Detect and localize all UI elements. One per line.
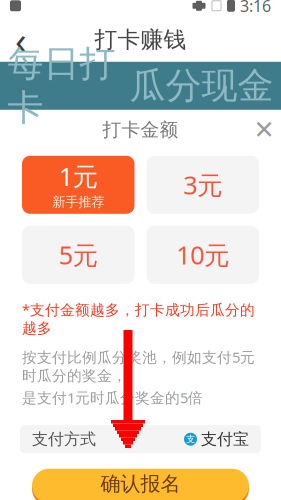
staticText: 按支付比例瓜分奖池，例如支付5元时瓜分的奖金，: [22, 347, 255, 385]
staticText: 支: [186, 433, 195, 445]
button[interactable]: 支付方式: [20, 425, 261, 453]
staticText: 3:16: [240, 0, 271, 16]
staticText: 1元: [59, 159, 98, 193]
staticText: 打卡金额: [102, 118, 178, 141]
button[interactable]: 1元: [22, 156, 134, 214]
button[interactable]: 关闭: [247, 113, 281, 147]
staticText: 新手推荐: [52, 194, 104, 210]
button[interactable]: 10元: [146, 226, 259, 284]
staticText: ✕: [253, 115, 274, 144]
staticText: 每日打卡: [7, 42, 115, 130]
staticText: 5元: [59, 238, 98, 271]
staticText: 3元: [183, 168, 222, 201]
staticText: 确认报名: [100, 471, 180, 496]
button[interactable]: 返回: [0, 19, 42, 61]
staticText: *支付金额越多，打卡成功后瓜分的越多: [22, 300, 255, 337]
staticText: 支付方式: [32, 429, 96, 449]
staticText: 打卡赚钱: [94, 26, 186, 54]
staticText: 支付宝: [201, 429, 249, 449]
staticText: 瓜分现金: [129, 64, 273, 108]
staticText: 10元: [176, 238, 229, 271]
staticText: ‹: [15, 15, 27, 65]
button[interactable]: 确认报名: [0, 465, 281, 500]
button[interactable]: 5元: [22, 226, 134, 284]
staticText: 是支付1元时瓜分奖金的5倍: [22, 388, 203, 407]
button[interactable]: 3元: [146, 156, 259, 214]
